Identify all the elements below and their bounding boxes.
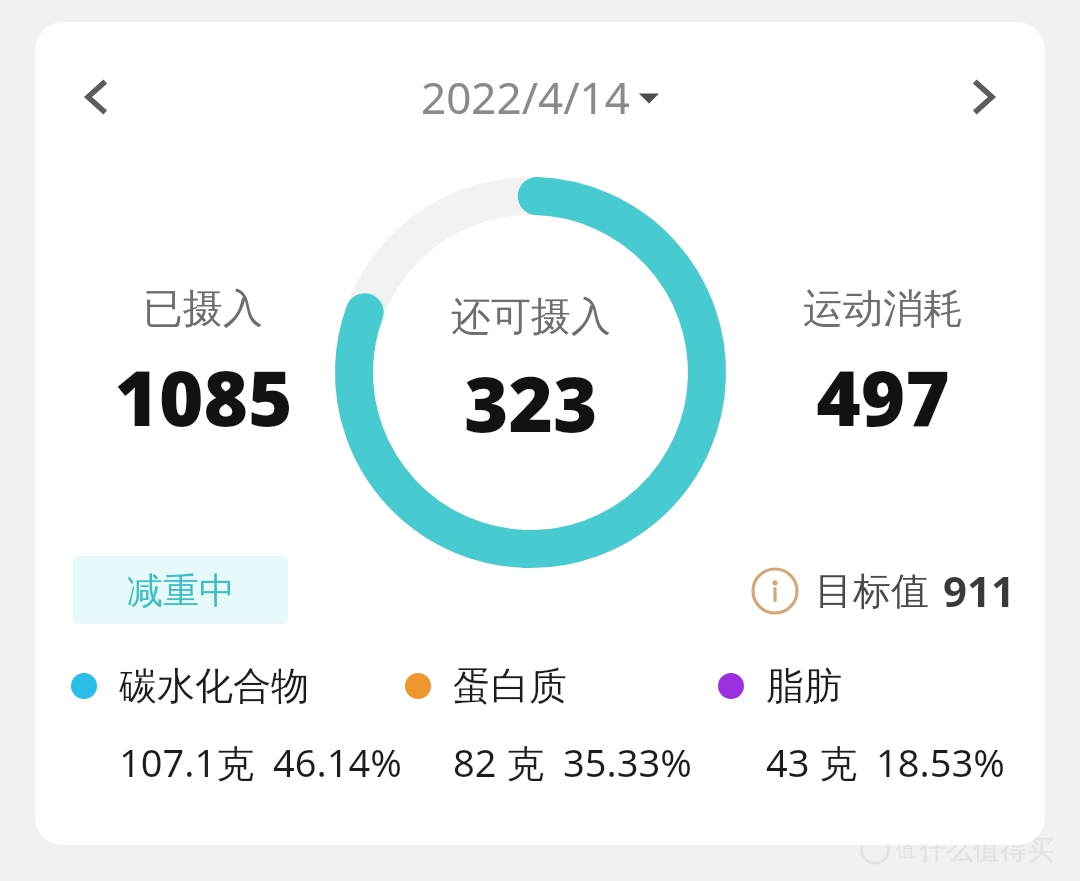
- staticText: 运动消耗: [803, 283, 963, 333]
- other: Goal info: [751, 567, 799, 615]
- staticText: 还可摄入: [451, 291, 611, 341]
- staticText: 497: [816, 345, 950, 449]
- staticText: 2022/4/14: [421, 67, 630, 127]
- button[interactable]: 脂肪: [718, 662, 1025, 788]
- staticText: 35.33%: [563, 736, 692, 788]
- button[interactable]: 减重中: [73, 556, 288, 624]
- staticText: 减重中: [127, 568, 235, 613]
- button[interactable]: 已摄入: [63, 283, 343, 449]
- staticText: 目标值: [815, 567, 929, 615]
- staticText: 脂肪: [766, 662, 842, 710]
- staticText: 46.14%: [273, 736, 402, 788]
- staticText: 107.1克: [119, 736, 255, 788]
- staticText: 1085: [114, 345, 293, 449]
- staticText: 碳水化合物: [119, 662, 309, 710]
- staticText: 蛋白质: [453, 662, 567, 710]
- staticText: 已摄入: [143, 283, 263, 333]
- button[interactable]: 碳水化合物: [71, 662, 405, 788]
- staticText: 值: [896, 838, 915, 862]
- staticText: 43 克: [766, 736, 858, 788]
- button[interactable]: 2022/4/14: [411, 61, 670, 133]
- staticText: 911: [943, 562, 1016, 619]
- button[interactable]: 蛋白质: [405, 662, 718, 788]
- staticText: 什么值得买: [919, 833, 1054, 867]
- button[interactable]: Next day: [941, 54, 1027, 140]
- button[interactable]: Goal info: [747, 558, 1020, 623]
- staticText: 18.53%: [876, 736, 1005, 788]
- staticText: 82 克: [453, 736, 545, 788]
- button[interactable]: Previous day: [53, 54, 139, 140]
- staticText: 323: [464, 351, 598, 455]
- button[interactable]: 运动消耗: [743, 283, 1023, 449]
